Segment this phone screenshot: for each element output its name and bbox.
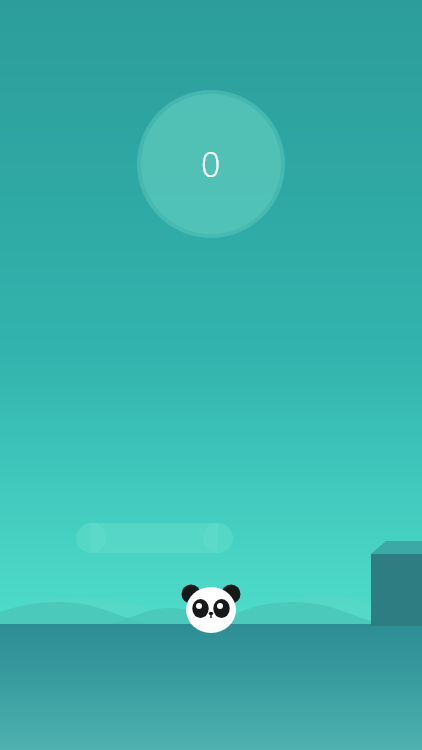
button[interactable]: Panda jump game scene [0,0,422,750]
